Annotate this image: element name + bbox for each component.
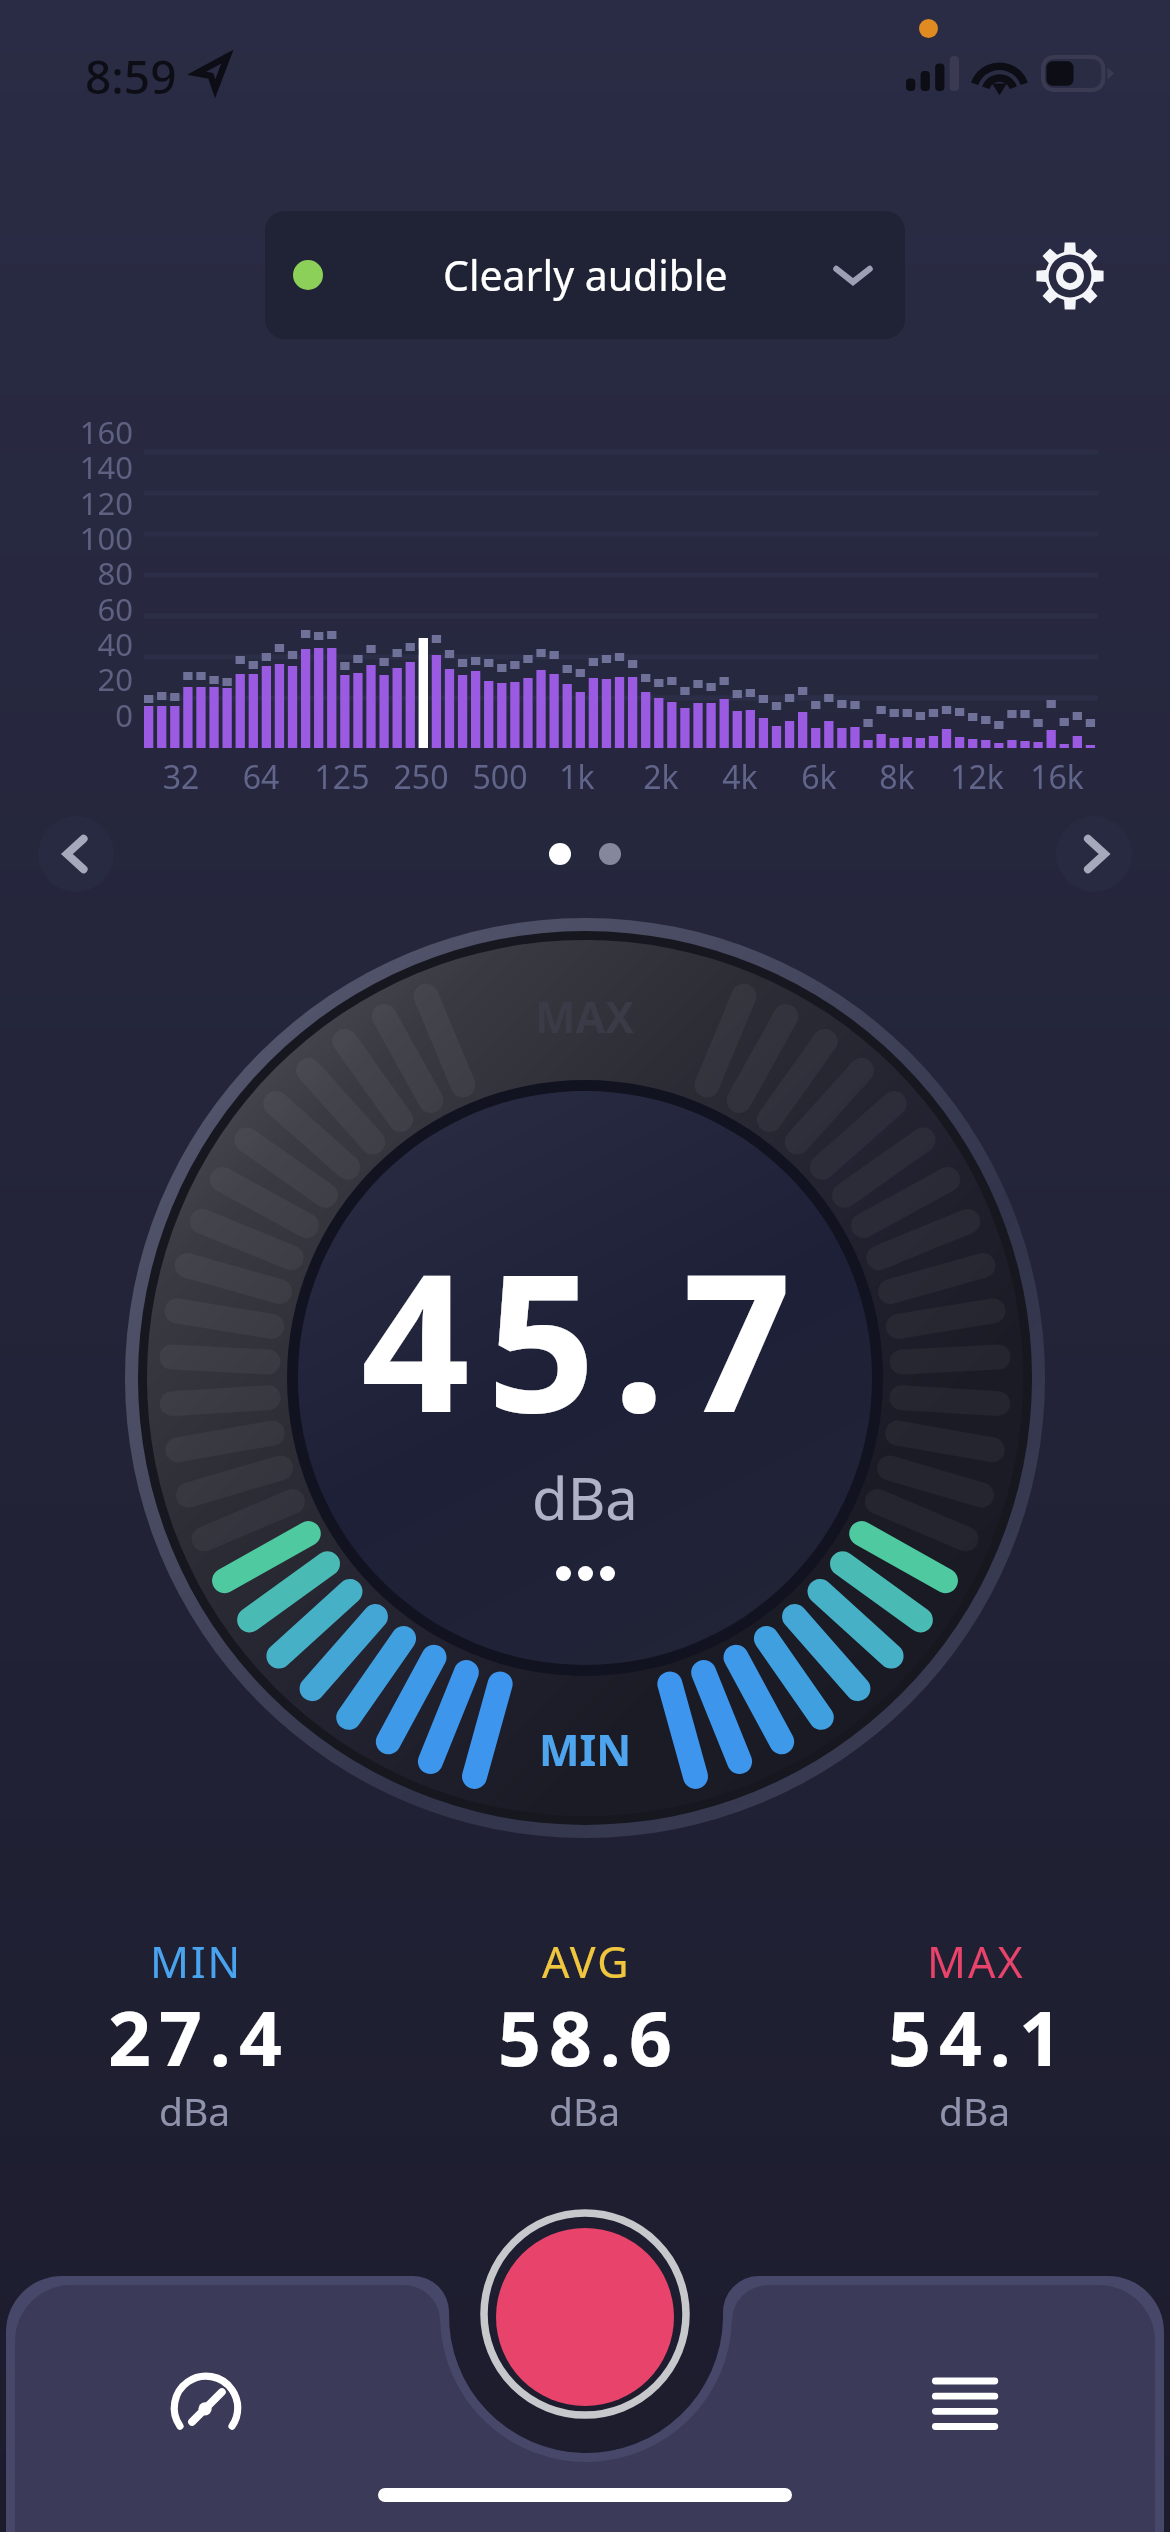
staticText: 40 bbox=[0, 623, 133, 665]
button[interactable]: Menu bbox=[920, 2355, 1012, 2447]
staticText: 32 bbox=[121, 755, 241, 799]
staticText: 1k bbox=[517, 755, 637, 799]
staticText: 0 bbox=[0, 694, 133, 736]
staticText: 27.4 bbox=[108, 1986, 290, 2088]
staticText: 250 bbox=[361, 755, 481, 799]
staticText: dBa bbox=[549, 2084, 621, 2137]
staticText: dBa bbox=[939, 2084, 1011, 2137]
button[interactable]: Settings bbox=[1036, 242, 1104, 310]
staticText: 2k bbox=[601, 755, 721, 799]
staticText: 20 bbox=[0, 658, 133, 700]
staticText: MAX bbox=[927, 1932, 1025, 1991]
staticText: 125 bbox=[282, 755, 402, 799]
staticText: 140 bbox=[0, 446, 133, 488]
staticText: 500 bbox=[440, 755, 560, 799]
button[interactable]: Meter bbox=[160, 2355, 252, 2447]
staticText: 54.1 bbox=[888, 1986, 1070, 2088]
staticText: dBa bbox=[532, 1458, 638, 1537]
staticText: 64 bbox=[201, 755, 321, 799]
staticText: 8k bbox=[837, 755, 957, 799]
staticText: Clearly audible bbox=[443, 247, 728, 303]
staticText: 58.6 bbox=[498, 1986, 680, 2088]
staticText: 160 bbox=[0, 411, 133, 453]
staticText: MIN bbox=[150, 1932, 243, 1991]
staticText: 60 bbox=[0, 588, 133, 630]
staticText: 12k bbox=[917, 755, 1037, 799]
staticText: 4k bbox=[680, 755, 800, 799]
staticText: dBa bbox=[159, 2084, 231, 2137]
staticText: 8:59 bbox=[85, 45, 177, 108]
button[interactable]: Record bbox=[477, 2210, 693, 2426]
staticText: 120 bbox=[0, 482, 133, 524]
button[interactable]: Previous bbox=[38, 816, 114, 892]
staticText: MAX bbox=[535, 987, 635, 1046]
staticText: 16k bbox=[997, 755, 1117, 799]
staticText: 6k bbox=[759, 755, 879, 799]
staticText: 100 bbox=[0, 517, 133, 559]
staticText: 45.7 bbox=[361, 1209, 809, 1468]
staticText: AVG bbox=[542, 1932, 631, 1991]
button[interactable]: Next bbox=[1056, 816, 1132, 892]
staticText: MIN bbox=[539, 1720, 632, 1779]
button[interactable]: Clearly audible bbox=[265, 211, 905, 339]
staticText: 80 bbox=[0, 552, 133, 594]
